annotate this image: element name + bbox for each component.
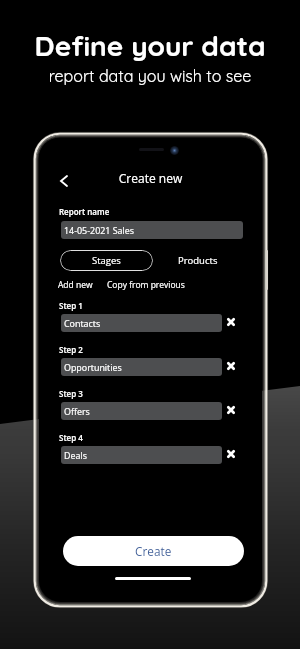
staticText: Contacts: [64, 317, 101, 329]
button[interactable]: Remove step 1: [222, 310, 240, 334]
button[interactable]: Create: [63, 536, 244, 566]
button[interactable]: Remove step 3: [222, 398, 240, 422]
staticText: Report name: [59, 206, 110, 217]
button[interactable]: Offers: [64, 402, 222, 420]
staticText: Create new: [39, 170, 262, 186]
button[interactable]: Back: [53, 169, 75, 193]
button[interactable]: Remove step 4: [222, 442, 240, 466]
staticText: Copy from previous: [107, 279, 185, 291]
staticText: Stages: [92, 254, 121, 267]
staticText: Step 3: [59, 388, 83, 399]
staticText: Products: [178, 254, 218, 267]
button[interactable]: Stages: [60, 250, 153, 271]
button[interactable]: Products: [161, 250, 235, 271]
staticText: Define your data: [0, 28, 300, 63]
button[interactable]: Add new: [58, 278, 93, 292]
staticText: Step 2: [59, 344, 83, 355]
staticText: Add new: [58, 279, 93, 291]
button[interactable]: Deals: [64, 446, 222, 464]
staticText: report data you wish to see: [0, 66, 300, 86]
staticText: Offers: [64, 405, 90, 417]
button[interactable]: Remove step 2: [222, 354, 240, 378]
button[interactable]: Opportunities: [64, 358, 222, 376]
staticText: Create: [135, 543, 172, 559]
staticText: Opportunities: [64, 361, 122, 373]
staticText: Step 1: [59, 300, 83, 311]
button[interactable]: Copy from previous: [107, 278, 185, 292]
staticText: 14-05-2021 Sales: [64, 224, 134, 236]
staticText: Deals: [64, 449, 87, 461]
button[interactable]: 14-05-2021 Sales: [64, 221, 243, 239]
staticText: Step 4: [59, 432, 83, 443]
button[interactable]: Contacts: [64, 314, 222, 332]
